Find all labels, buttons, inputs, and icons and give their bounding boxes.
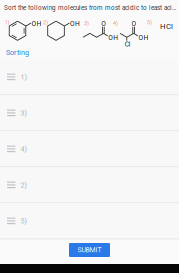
button[interactable]: 1) xyxy=(0,59,179,95)
button[interactable]: 5) xyxy=(0,203,179,239)
staticText: O xyxy=(101,20,106,28)
button[interactable]: 4) xyxy=(0,131,179,167)
staticText: HCl xyxy=(160,22,173,31)
staticText: OH xyxy=(108,34,118,42)
staticText: 1) xyxy=(20,73,27,81)
staticText: Cl xyxy=(125,40,131,48)
staticText: O xyxy=(131,20,136,28)
staticText: 5) xyxy=(20,217,27,225)
staticText: 3) xyxy=(84,20,89,27)
staticText: 1) xyxy=(4,19,9,26)
staticText: SUBMIT xyxy=(77,246,101,254)
staticText: 4) xyxy=(20,145,27,153)
button[interactable]: SUBMIT xyxy=(69,243,110,257)
staticText: OH xyxy=(70,20,80,28)
staticText: OH xyxy=(32,20,42,28)
staticText: 2) xyxy=(20,181,27,189)
staticText: 2) xyxy=(43,19,48,26)
staticText: Sort the following molecules from most a… xyxy=(4,4,179,11)
staticText: OH xyxy=(138,34,148,42)
staticText: 3) xyxy=(20,109,27,117)
button[interactable]: 2) xyxy=(0,167,179,203)
staticText: Sorting xyxy=(6,48,29,57)
staticText: 4) xyxy=(113,20,118,27)
staticText: 5) xyxy=(147,19,152,26)
button[interactable]: 3) xyxy=(0,95,179,131)
